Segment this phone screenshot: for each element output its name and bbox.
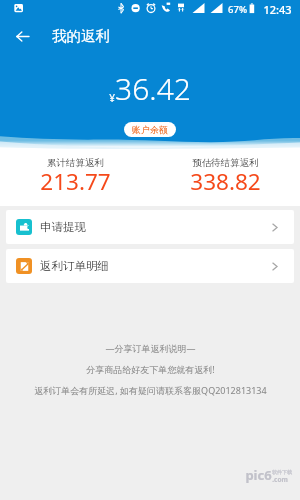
staticText: 返利订单会有所延迟, 如有疑问请联系客服QQ2012813134	[34, 384, 267, 396]
staticText: 36.42	[115, 68, 191, 109]
staticText: 申请提现	[40, 220, 86, 234]
staticText: pic6	[245, 466, 272, 484]
staticText: 账户余额	[132, 124, 168, 135]
button[interactable]: Back	[0, 18, 44, 54]
staticText: 预估待结算返利	[192, 157, 259, 169]
staticText: —分享订单返利说明—	[105, 342, 196, 354]
staticText: .com	[272, 475, 288, 484]
staticText: 分享商品给好友下单您就有返利!	[86, 363, 215, 375]
button[interactable]: 申请提现	[6, 210, 294, 244]
staticText: 累计结算返利	[47, 157, 104, 169]
staticText: 返利订单明细	[40, 259, 109, 273]
staticText: 67%	[228, 3, 247, 16]
staticText: 软件下载	[272, 469, 292, 475]
staticText: 我的返利	[52, 27, 110, 45]
staticText: 12:43	[263, 2, 292, 17]
staticText: ¥	[109, 91, 115, 105]
staticText: 213.77	[40, 166, 111, 197]
button[interactable]: 返利订单明细	[6, 249, 294, 283]
staticText: 338.82	[190, 166, 261, 197]
